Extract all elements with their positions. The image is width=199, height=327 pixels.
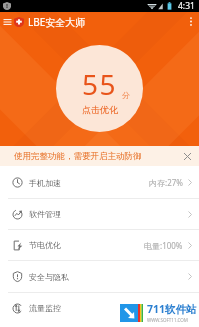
button[interactable]: More options (183, 12, 199, 31)
button[interactable]: 节电优化 (0, 230, 199, 260)
staticText: 内存:27% (149, 177, 183, 188)
button[interactable]: Dismiss notice (180, 146, 194, 166)
staticText: 节电优化 (29, 240, 61, 250)
staticText: 4:31 (178, 0, 195, 12)
staticText: 711软件站 (147, 302, 197, 316)
staticText: 点击优化 (82, 104, 118, 115)
staticText: 使用完整功能，需要开启主动防御 (14, 151, 142, 162)
staticText: 流量监控 (29, 303, 61, 313)
staticText: 分 (122, 90, 130, 100)
button[interactable]: 手机加速 (0, 167, 199, 198)
button[interactable]: 55 (56, 45, 143, 132)
button[interactable]: 流量监控 (0, 293, 199, 323)
staticText: WWW.SOFT11.COM (147, 317, 188, 323)
button[interactable]: Open navigation menu (0, 12, 14, 31)
staticText: 软件管理 (29, 209, 61, 219)
button[interactable]: 安全与隐私 (0, 261, 199, 292)
staticText: LBE安全大师 (28, 15, 86, 29)
staticText: 安全与隐私 (29, 272, 69, 282)
staticText: 55 (82, 65, 118, 103)
staticText: 电量:100% (144, 240, 183, 251)
staticText: 手机加速 (29, 178, 61, 188)
button[interactable]: 软件管理 (0, 199, 199, 229)
